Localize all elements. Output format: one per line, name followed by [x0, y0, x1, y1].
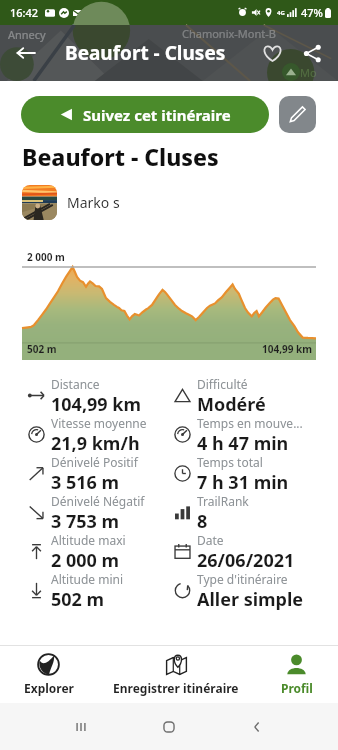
staticText: 21,9 km/h [51, 431, 140, 454]
staticText: Date [197, 532, 224, 548]
staticText: 2 000 m [27, 250, 65, 264]
staticText: Annecy [8, 27, 46, 42]
staticText: Vitesse moyenne [51, 415, 147, 431]
button[interactable]: Back [6, 33, 46, 73]
staticText: Beaufort - Cluses [22, 141, 219, 172]
staticText: 26/06/2021 [197, 548, 295, 571]
staticText: 2 000 m [51, 548, 120, 571]
staticText: Dénivelé Négatif [51, 493, 145, 509]
staticText: Chamonix-Mont-B [182, 26, 276, 41]
staticText: 16:42 [10, 5, 39, 20]
staticText: 4G [277, 9, 285, 17]
staticText: 47% [301, 5, 323, 20]
staticText: 7 h 31 min [197, 470, 289, 493]
staticText: Temps en mouve... [197, 415, 303, 431]
staticText: Enregistrer itinéraire [113, 680, 239, 696]
staticText: Altitude mini [51, 571, 124, 587]
staticText: Suivez cet itinéraire [83, 105, 231, 125]
staticText: 8 [197, 509, 208, 532]
staticText: Altitude maxi [51, 532, 126, 548]
staticText: Dénivelé Positif [51, 454, 138, 470]
staticText: Difficulté [197, 376, 248, 392]
staticText: Distance [51, 376, 100, 392]
staticText: Beaufort - Cluses [65, 40, 226, 66]
button[interactable]: Favorite [252, 33, 292, 73]
staticText: 502 m [27, 342, 57, 356]
staticText: Type d'itinéraire [197, 571, 288, 587]
staticText: Aller simple [197, 587, 304, 610]
button[interactable]: Profil [255, 646, 338, 703]
button[interactable]: Edit [279, 96, 316, 133]
staticText: Temps total [197, 454, 263, 470]
staticText: 104,99 km [51, 392, 141, 415]
staticText: Profil [281, 680, 313, 696]
button[interactable]: Marko s [22, 185, 338, 220]
button[interactable]: Suivez cet itinéraire [21, 96, 269, 133]
staticText: Modéré [197, 392, 266, 415]
staticText: 502 m [51, 587, 105, 610]
staticText: Explorer [24, 680, 74, 696]
button[interactable]: Share [292, 33, 332, 73]
staticText: TrailRank [197, 493, 249, 509]
staticText: Marko s [67, 193, 120, 212]
staticText: Mo [300, 65, 317, 80]
button[interactable]: Explorer [0, 646, 97, 703]
button[interactable]: Enregistrer itinéraire [97, 646, 255, 703]
staticText: 3 516 m [51, 470, 120, 493]
staticText: 104,99 km [262, 342, 312, 356]
staticText: 4 h 47 min [197, 431, 289, 454]
staticText: 3 753 m [51, 509, 120, 532]
